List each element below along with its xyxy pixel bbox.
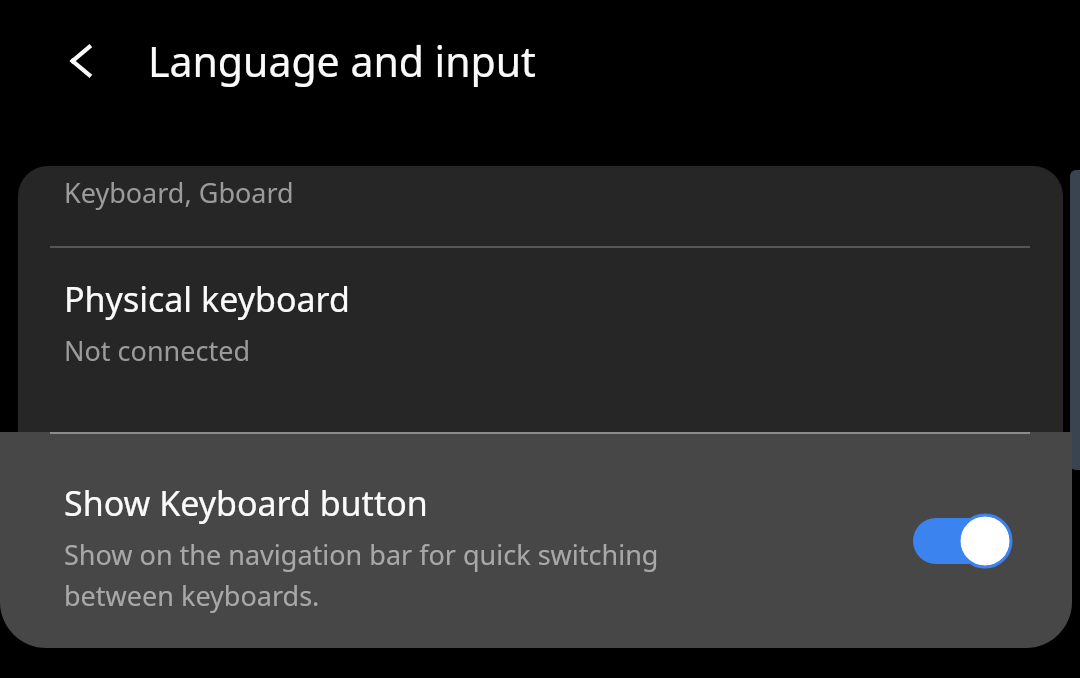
staticText: Show Keyboard button xyxy=(64,480,428,526)
button[interactable]: Physical keyboard xyxy=(18,248,1063,438)
staticText: Show on the navigation bar for quick swi… xyxy=(64,536,659,614)
button[interactable]: Show Keyboard button xyxy=(0,432,1072,648)
staticText: Language and input xyxy=(148,33,536,89)
staticText: Physical keyboard xyxy=(64,276,350,322)
button[interactable]: Show Keyboard button toggle, on xyxy=(900,497,1022,585)
staticText: Keyboard, Gboard xyxy=(64,174,294,211)
button[interactable]: Back xyxy=(48,25,120,97)
staticText: Not connected xyxy=(64,332,251,369)
